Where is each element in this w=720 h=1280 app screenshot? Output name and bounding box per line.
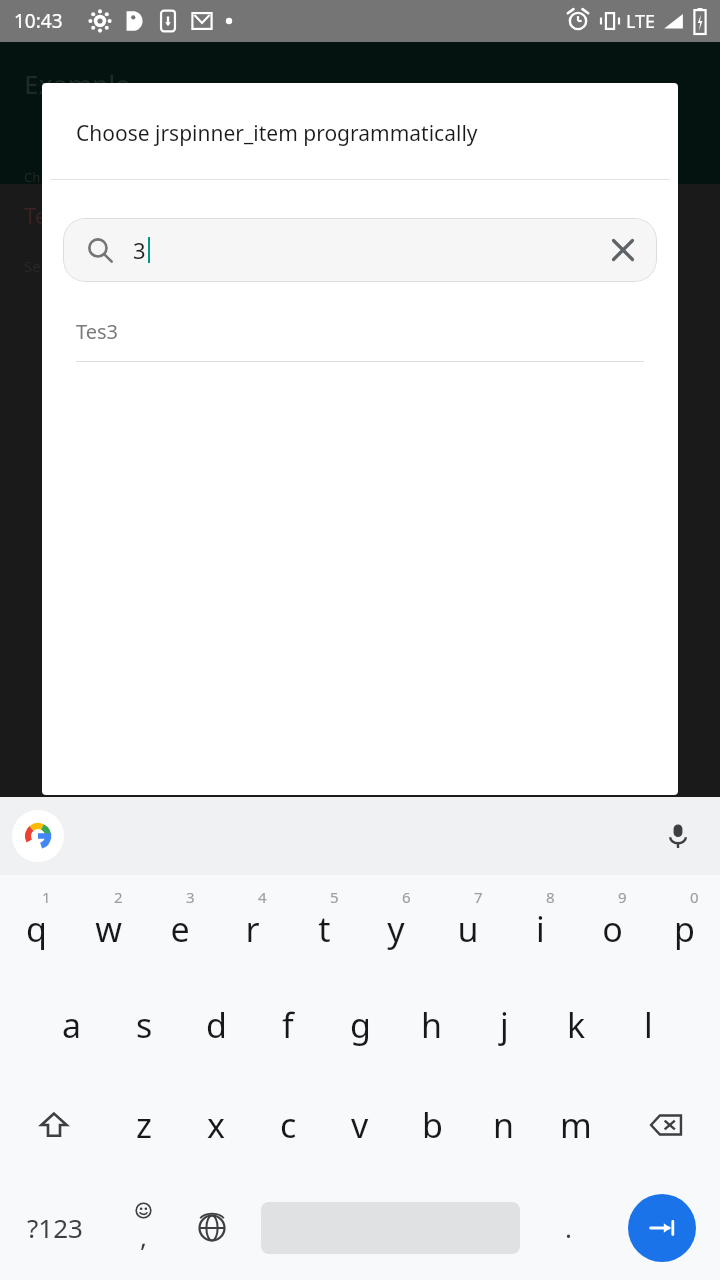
button[interactable]: Emoji and comma xyxy=(109,1175,177,1280)
staticText: LTE xyxy=(626,9,656,34)
staticText: w xyxy=(95,906,122,952)
button[interactable]: f xyxy=(252,975,324,1075)
staticText: b xyxy=(422,1102,443,1148)
button[interactable]: h xyxy=(396,975,468,1075)
staticText: d xyxy=(206,1002,227,1048)
button[interactable]: 9 xyxy=(576,875,648,975)
button[interactable]: k xyxy=(540,975,612,1075)
staticText: 5 xyxy=(330,887,339,907)
staticText: v xyxy=(351,1102,369,1148)
staticText: Ch xyxy=(24,168,41,186)
staticText: . xyxy=(565,1210,572,1245)
staticText: g xyxy=(350,1002,371,1048)
staticText: l xyxy=(644,1002,653,1048)
staticText: c xyxy=(280,1102,297,1148)
button[interactable]: 8 xyxy=(504,875,576,975)
staticText: x xyxy=(207,1102,225,1148)
button[interactable]: b xyxy=(396,1075,468,1175)
button[interactable]: v xyxy=(324,1075,396,1175)
button[interactable]: Enter xyxy=(603,1175,720,1280)
staticText: 8 xyxy=(546,887,555,907)
button[interactable]: Tes3 xyxy=(76,304,644,362)
staticText: , xyxy=(140,1219,147,1254)
staticText: Example xyxy=(24,66,131,101)
button[interactable]: Backspace xyxy=(612,1075,720,1175)
button[interactable]: s xyxy=(108,975,180,1075)
staticText: 7 xyxy=(474,887,483,907)
button[interactable]: a xyxy=(36,975,108,1075)
staticText: i xyxy=(536,906,545,952)
staticText: a xyxy=(62,1002,82,1048)
staticText: 2 xyxy=(114,887,123,907)
staticText: q xyxy=(26,906,47,952)
staticText: 4 xyxy=(258,887,267,907)
button[interactable]: j xyxy=(468,975,540,1075)
button[interactable]: 3 xyxy=(63,218,657,282)
staticText: u xyxy=(457,906,479,952)
button[interactable]: Space xyxy=(246,1175,534,1280)
button[interactable]: 4 xyxy=(216,875,288,975)
button[interactable]: 6 xyxy=(360,875,432,975)
staticText: t xyxy=(318,906,331,952)
staticText: 10:43 xyxy=(14,8,63,34)
staticText: z xyxy=(136,1102,152,1148)
staticText: 0 xyxy=(690,887,699,907)
staticText: p xyxy=(674,906,695,952)
button[interactable]: . xyxy=(534,1175,603,1280)
button[interactable]: Change language xyxy=(177,1175,246,1280)
staticText: 3 xyxy=(133,235,146,265)
staticText: 6 xyxy=(402,887,411,907)
button[interactable]: Clear search xyxy=(599,226,647,274)
button[interactable]: 2 xyxy=(72,875,144,975)
staticText: j xyxy=(500,1002,509,1048)
button[interactable]: 7 xyxy=(432,875,504,975)
button[interactable]: Voice input xyxy=(654,812,702,860)
button[interactable]: 3 xyxy=(144,875,216,975)
button[interactable]: l xyxy=(612,975,684,1075)
button[interactable]: ?123 xyxy=(0,1175,109,1280)
button[interactable]: g xyxy=(324,975,396,1075)
staticText: s xyxy=(136,1002,153,1048)
staticText: Choose jrspinner_item programmatically xyxy=(76,119,478,148)
button[interactable]: d xyxy=(180,975,252,1075)
button[interactable]: n xyxy=(468,1075,540,1175)
button[interactable]: m xyxy=(540,1075,612,1175)
staticText: ?123 xyxy=(27,1210,83,1245)
staticText: f xyxy=(282,1002,294,1048)
staticText: e xyxy=(170,906,190,952)
staticText: Te xyxy=(24,200,48,230)
button[interactable]: 0 xyxy=(648,875,720,975)
staticText: h xyxy=(421,1002,443,1048)
button[interactable]: x xyxy=(180,1075,252,1175)
staticText: 3 xyxy=(186,887,195,907)
button[interactable]: Google search xyxy=(12,810,64,862)
button[interactable]: c xyxy=(252,1075,324,1175)
staticText: o xyxy=(602,906,623,952)
staticText: 1 xyxy=(42,887,51,907)
staticText: Tes3 xyxy=(76,318,119,345)
button[interactable]: z xyxy=(108,1075,180,1175)
staticText: r xyxy=(245,906,260,952)
staticText: n xyxy=(493,1102,515,1148)
staticText: Se xyxy=(24,256,41,276)
staticText: m xyxy=(560,1102,592,1148)
staticText: k xyxy=(567,1002,586,1048)
button[interactable]: 5 xyxy=(288,875,360,975)
staticText: y xyxy=(387,906,405,952)
staticText: 9 xyxy=(618,887,627,907)
button[interactable]: 1 xyxy=(0,875,72,975)
button[interactable]: Shift xyxy=(0,1075,108,1175)
